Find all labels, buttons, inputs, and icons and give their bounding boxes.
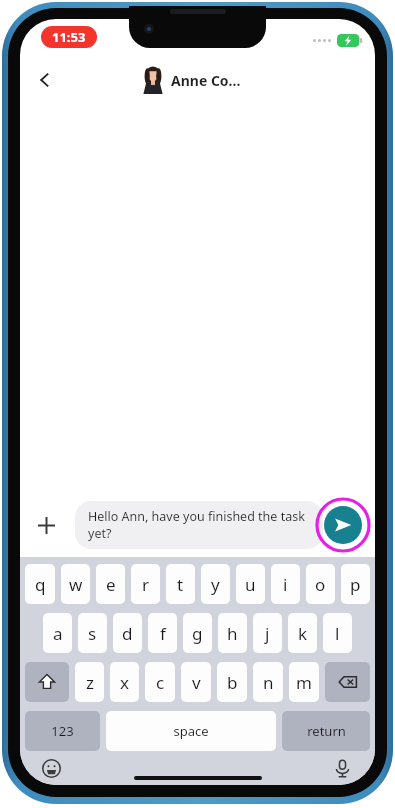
- button[interactable]: n: [253, 662, 283, 702]
- button[interactable]: q: [25, 564, 55, 604]
- staticText: Hello Ann, have you finished the task ye…: [88, 508, 310, 542]
- button[interactable]: x: [110, 662, 139, 702]
- button[interactable]: Add attachment: [30, 509, 62, 541]
- staticText: l: [335, 622, 340, 645]
- staticText: d: [122, 622, 133, 645]
- staticText: m: [296, 671, 312, 694]
- button[interactable]: Hello Ann, have you finished the task ye…: [75, 501, 323, 549]
- staticText: u: [245, 573, 256, 596]
- staticText: o: [315, 573, 326, 596]
- staticText: e: [106, 573, 116, 596]
- button[interactable]: h: [218, 613, 247, 653]
- button[interactable]: Emoji: [36, 753, 66, 783]
- button[interactable]: Backspace: [325, 662, 370, 702]
- staticText: k: [298, 622, 308, 645]
- button[interactable]: y: [201, 564, 230, 604]
- button[interactable]: Dictate: [327, 753, 357, 783]
- staticText: v: [192, 671, 201, 694]
- staticText: h: [227, 622, 238, 645]
- staticText: n: [263, 671, 274, 694]
- staticText: z: [86, 671, 94, 694]
- staticText: t: [177, 573, 184, 596]
- button[interactable]: d: [113, 613, 142, 653]
- button[interactable]: Shift: [25, 662, 69, 702]
- button[interactable]: i: [271, 564, 300, 604]
- button[interactable]: space: [106, 711, 276, 751]
- button[interactable]: b: [217, 662, 247, 702]
- button[interactable]: f: [148, 613, 177, 653]
- staticText: g: [192, 622, 203, 645]
- button[interactable]: r: [131, 564, 160, 604]
- staticText: b: [227, 671, 238, 694]
- staticText: 123: [51, 722, 74, 740]
- staticText: space: [173, 722, 209, 740]
- button[interactable]: u: [236, 564, 265, 604]
- button[interactable]: p: [341, 564, 370, 604]
- button[interactable]: l: [323, 613, 352, 653]
- button[interactable]: return: [282, 711, 370, 751]
- button[interactable]: o: [306, 564, 335, 604]
- staticText: c: [156, 671, 165, 694]
- staticText: p: [350, 573, 361, 596]
- staticText: Anne Co...: [171, 71, 241, 90]
- button[interactable]: v: [181, 662, 211, 702]
- button[interactable]: g: [183, 613, 212, 653]
- staticText: y: [211, 573, 220, 596]
- button[interactable]: s: [78, 613, 107, 653]
- staticText: a: [53, 622, 63, 645]
- staticText: 11:53: [52, 28, 86, 46]
- button[interactable]: 123: [25, 711, 100, 751]
- staticText: f: [160, 622, 166, 645]
- staticText: r: [142, 573, 150, 596]
- staticText: s: [88, 622, 97, 645]
- button[interactable]: t: [166, 564, 195, 604]
- button[interactable]: w: [61, 564, 90, 604]
- button[interactable]: e: [96, 564, 125, 604]
- button[interactable]: z: [75, 662, 104, 702]
- staticText: q: [35, 573, 46, 596]
- staticText: w: [69, 573, 83, 596]
- staticText: return: [307, 722, 346, 740]
- button[interactable]: Send: [315, 497, 371, 553]
- button[interactable]: k: [288, 613, 317, 653]
- staticText: j: [265, 622, 270, 645]
- staticText: i: [283, 573, 288, 596]
- button[interactable]: a: [43, 613, 72, 653]
- button[interactable]: m: [289, 662, 319, 702]
- button[interactable]: c: [145, 662, 175, 702]
- staticText: x: [120, 671, 129, 694]
- button[interactable]: Back: [28, 63, 62, 97]
- button[interactable]: j: [253, 613, 282, 653]
